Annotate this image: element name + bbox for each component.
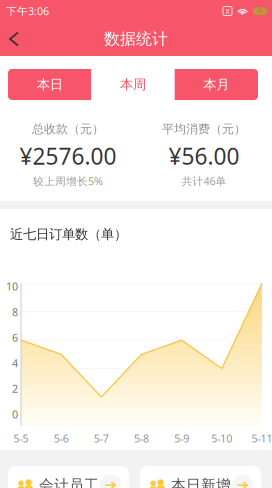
staticText: 6 [12, 330, 18, 345]
staticText: ¥2576.00 [19, 141, 116, 171]
staticText: 5-11 [251, 431, 272, 446]
staticText: 5-10 [211, 431, 232, 446]
staticText: 本日 [37, 76, 63, 93]
button[interactable]: 本日 [8, 69, 91, 100]
staticText: 较上周增长5% [33, 174, 103, 188]
staticText: 5-9 [174, 431, 189, 446]
staticText: 8 [12, 305, 18, 319]
staticText: 近七日订单数（单） [10, 226, 127, 242]
staticText: 本日新增 [171, 476, 231, 488]
staticText: 共计46单 [181, 174, 226, 188]
staticText: 5-8 [134, 431, 149, 446]
staticText: 4 [12, 356, 18, 370]
button[interactable]: 本月 [175, 69, 258, 100]
staticText: 5-7 [94, 431, 109, 446]
staticText: 10 [6, 279, 18, 294]
staticText: ¥56.00 [168, 141, 239, 171]
staticText: 平均消费（元） [162, 122, 246, 136]
staticText: 2 [12, 382, 18, 396]
staticText: x [225, 6, 229, 16]
staticText: 下午3:06 [6, 4, 49, 18]
button[interactable]: 返回 [0, 22, 29, 56]
staticText: 0 [12, 407, 18, 421]
staticText: 本周 [120, 76, 146, 93]
button[interactable]: 会计员工 [8, 466, 129, 488]
staticText: 总收款（元） [32, 122, 104, 136]
staticText: 5-5 [13, 431, 28, 446]
staticText: 5-6 [54, 431, 69, 446]
staticText: 会计员工 [39, 476, 99, 488]
button[interactable]: 本周 [91, 69, 175, 100]
button[interactable]: 本日新增 [140, 466, 261, 488]
staticText: 数据统计 [104, 29, 168, 49]
staticText: 本月 [203, 76, 229, 93]
